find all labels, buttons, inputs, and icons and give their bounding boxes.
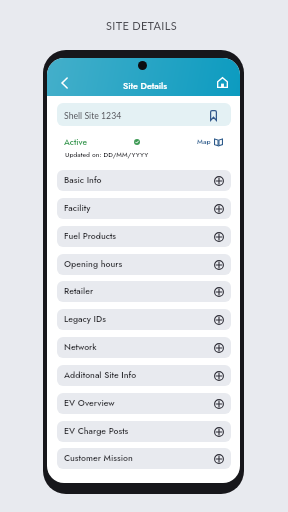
- staticText: Opening hours: [64, 258, 123, 271]
- button[interactable]: Basic Info: [57, 170, 231, 191]
- staticText: Basic Info: [64, 174, 102, 187]
- staticText: Network: [64, 341, 97, 354]
- button[interactable]: Additonal Site Info: [57, 365, 231, 386]
- staticText: EV Overview: [64, 397, 115, 410]
- button[interactable]: Back: [54, 73, 74, 93]
- staticText: Active: [64, 136, 88, 148]
- button[interactable]: EV Charge Posts: [57, 421, 231, 442]
- button[interactable]: Opening hours: [57, 254, 231, 275]
- staticText: Retailer: [64, 285, 94, 298]
- staticText: Updated on: DD/MM/YYYY: [65, 150, 149, 160]
- staticText: Fuel Products: [64, 230, 117, 243]
- button[interactable]: Customer Mission: [57, 448, 231, 469]
- button[interactable]: Facility: [57, 198, 231, 219]
- staticText: Map: [197, 137, 211, 147]
- button[interactable]: Legacy IDs: [57, 309, 231, 330]
- button[interactable]: Shell Site 1234: [57, 103, 231, 126]
- button[interactable]: Map: [197, 134, 223, 150]
- button[interactable]: Active: [64, 134, 88, 150]
- button[interactable]: EV Overview: [57, 393, 231, 414]
- staticText: Site Details: [123, 79, 168, 92]
- button[interactable]: Home: [212, 72, 232, 92]
- staticText: Customer Mission: [64, 452, 133, 465]
- staticText: SITE DETAILS: [106, 19, 177, 32]
- staticText: Additonal Site Info: [64, 369, 137, 382]
- staticText: Shell Site 1234: [64, 110, 122, 120]
- staticText: Facility: [64, 202, 91, 215]
- button[interactable]: Network: [57, 337, 231, 358]
- button[interactable]: Retailer: [57, 281, 231, 302]
- staticText: Legacy IDs: [64, 313, 106, 326]
- button[interactable]: Fuel Products: [57, 226, 231, 247]
- button[interactable]: Bookmark: [207, 109, 219, 121]
- staticText: EV Charge Posts: [64, 425, 129, 438]
